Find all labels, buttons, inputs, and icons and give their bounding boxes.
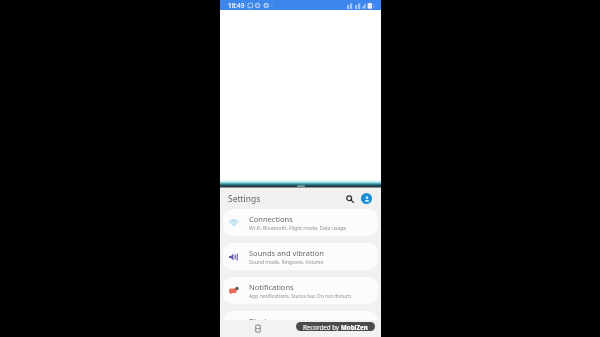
staticText: Sounds and vibration [249, 248, 324, 258]
staticText: App notifications, Status bar, Do not di… [249, 293, 352, 300]
button[interactable]: Account [359, 191, 374, 206]
staticText: Notifications [249, 282, 294, 292]
staticText: Recorded by [303, 323, 341, 331]
button[interactable]: Back [328, 320, 354, 337]
staticText: 18:49 [228, 1, 245, 10]
staticText: Connections [249, 214, 293, 224]
staticText: Sound mode, Ringtone, Volume [249, 259, 324, 266]
staticText: Display [249, 316, 275, 326]
staticText: Brightness, Blue light filter, Home scre… [249, 327, 345, 334]
staticText: Settings [228, 193, 261, 205]
button[interactable]: Home [288, 320, 314, 337]
button[interactable]: Notifications [223, 277, 378, 304]
button[interactable]: Search [342, 191, 357, 206]
staticText: MobiZen [341, 323, 368, 331]
staticText: Wi-Fi, Bluetooth, Flight mode, Data usag… [249, 225, 347, 232]
button[interactable]: Sounds and vibration [223, 243, 378, 270]
button[interactable]: Connections [223, 209, 378, 236]
button[interactable]: Display [223, 311, 378, 337]
button[interactable]: Recent apps [245, 320, 271, 337]
